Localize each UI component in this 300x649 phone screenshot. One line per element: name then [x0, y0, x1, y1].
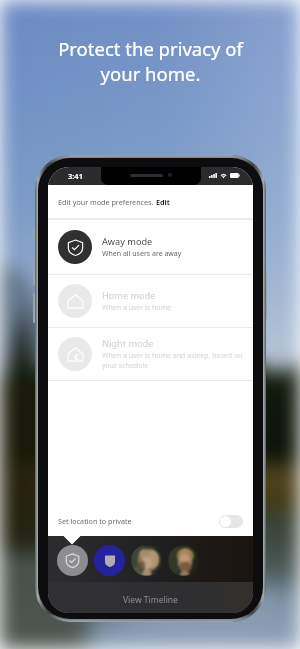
button[interactable]: Home mode	[48, 274, 253, 327]
staticText: When a user is home	[102, 303, 172, 313]
staticText: 3:41	[68, 171, 83, 181]
staticText: Home mode	[102, 289, 156, 302]
button[interactable]: Set location to private	[48, 506, 253, 536]
staticText: Night mode	[102, 337, 154, 350]
button[interactable]: Profile John	[168, 545, 199, 576]
button[interactable]: Security mode	[57, 545, 88, 576]
staticText: Set location to private	[58, 516, 132, 526]
staticText: View Timeline	[123, 594, 178, 606]
staticText: Protect the privacy of your home.	[58, 36, 243, 87]
button[interactable]: Edit	[156, 197, 170, 207]
staticText: Edit your mode preferences.	[58, 197, 156, 207]
staticText: When all users are away	[102, 249, 182, 259]
button[interactable]: Guard	[94, 545, 125, 576]
button[interactable]: View Timeline	[48, 582, 253, 613]
staticText: When a user is home and asleep, based on…	[102, 351, 243, 371]
button[interactable]: Away mode	[48, 219, 253, 274]
button[interactable]: Profile Amy	[131, 545, 162, 576]
staticText: Away mode	[102, 235, 153, 248]
button[interactable]: Night mode	[48, 327, 253, 380]
